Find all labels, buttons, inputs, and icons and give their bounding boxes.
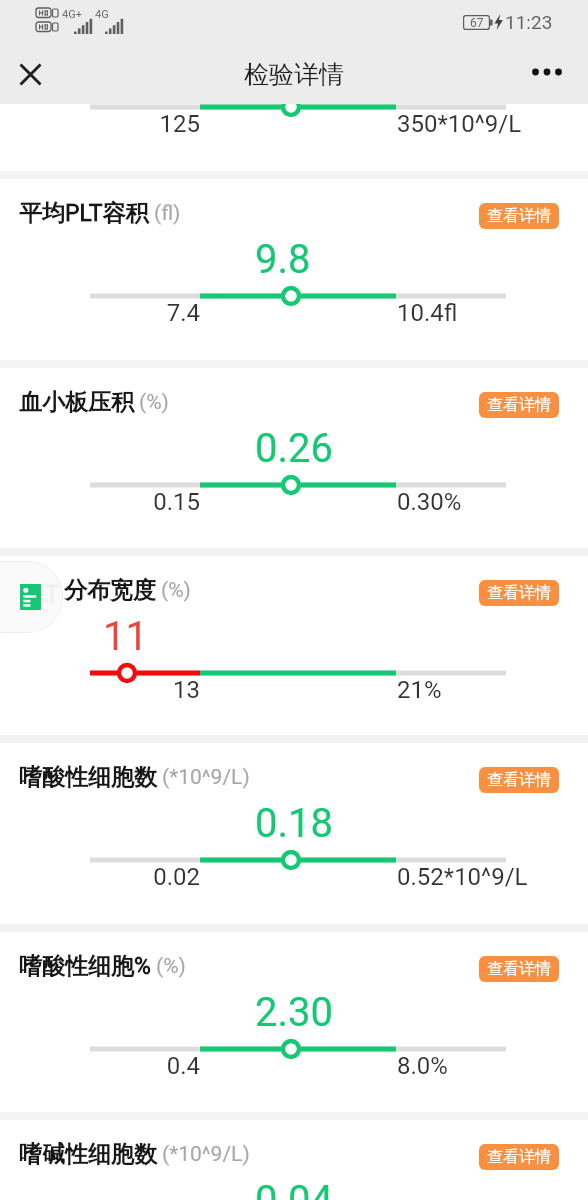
button[interactable]: 查看详情 [479,203,559,229]
staticText: 0.02 [0,863,200,891]
button[interactable]: More options [523,50,571,98]
staticText: 分布宽度 [64,576,156,605]
staticText: 8.0% [397,1052,448,1080]
staticText: 13 [0,676,200,704]
button[interactable]: 查看详情 [479,1144,559,1170]
staticText: 4G [95,8,109,21]
staticText: (%) [156,954,186,979]
button[interactable]: Report [0,561,63,633]
staticText: 查看详情 [487,206,551,226]
staticText: 10.4fl [397,299,458,327]
button[interactable]: 查看详情 [479,392,559,418]
staticText: 4G+ [62,8,82,21]
staticText: 检验详情 [244,59,344,90]
staticText: 0.52*10^9/L [397,863,528,891]
button[interactable]: 查看详情 [479,580,559,606]
staticText: 查看详情 [487,583,551,603]
staticText: 0.15 [0,488,200,516]
button[interactable]: 查看详情 [479,767,559,793]
staticText: 查看详情 [487,770,551,790]
staticText: 0.18 [255,800,333,847]
button[interactable]: 查看详情 [479,956,559,982]
staticText: 0.26 [255,425,333,472]
staticText: 9.8 [255,236,311,283]
staticText: 0.4 [0,1052,200,1080]
staticText: 21% [397,676,442,704]
staticText: (*10^9/L) [162,765,250,790]
staticText: 嗜碱性细胞数 [19,1140,157,1169]
staticText: 350*10^9/L [397,110,522,138]
staticText: 11:23 [505,11,553,33]
staticText: (%) [161,578,191,603]
staticText: (%) [139,390,169,415]
staticText: 嗜酸性细胞% [19,952,151,981]
staticText: (*10^9/L) [162,1142,250,1167]
staticText: 平均PLT容积 [19,199,149,228]
staticText: 2.30 [255,989,333,1036]
staticText: 嗜酸性细胞数 [19,763,157,792]
staticText: 125 [0,110,200,138]
staticText: 血小板压积 [19,388,134,417]
staticText: 查看详情 [487,959,551,979]
staticText: PLT [20,580,60,608]
staticText: 查看详情 [487,1147,551,1167]
staticText: 67 [470,16,484,30]
button[interactable]: Close [6,50,54,98]
staticText: 7.4 [0,299,200,327]
staticText: 0.04 [255,1177,333,1200]
staticText: (fl) [154,201,181,226]
staticText: 查看详情 [487,395,551,415]
staticText: 11 [103,613,148,660]
staticText: 0.30% [397,488,462,516]
